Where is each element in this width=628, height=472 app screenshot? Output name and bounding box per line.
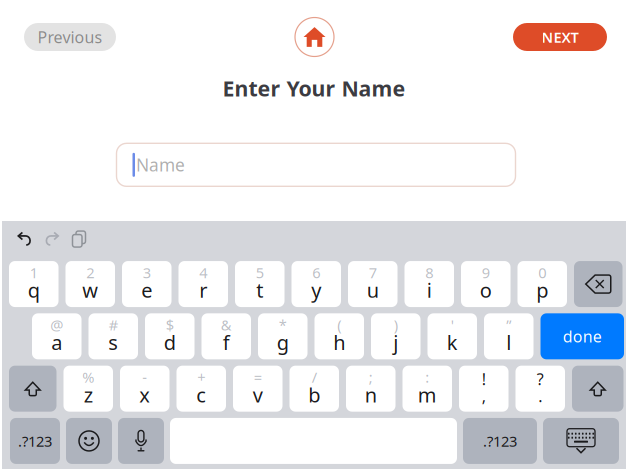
button[interactable]: ? <box>515 366 565 412</box>
button[interactable]: ” <box>484 313 533 359</box>
button[interactable]: Dictation <box>118 418 164 464</box>
button[interactable]: 7 <box>348 261 397 307</box>
button[interactable]: # <box>88 313 138 359</box>
staticText: @ <box>50 315 63 335</box>
button[interactable]: Hide keyboard <box>543 418 619 464</box>
staticText: * <box>279 315 287 335</box>
button[interactable]: Shift <box>572 366 623 412</box>
button[interactable]: 6 <box>291 261 341 307</box>
button[interactable]: Undo <box>17 231 33 246</box>
staticText: 0 <box>538 263 546 282</box>
button[interactable]: 0 <box>517 261 567 307</box>
staticText: 6 <box>312 263 320 282</box>
staticText: . <box>538 385 542 407</box>
staticText: m <box>418 381 437 408</box>
button[interactable]: 4 <box>178 261 228 307</box>
button[interactable]: ) <box>371 313 420 359</box>
staticText: k <box>447 329 458 356</box>
button[interactable]: .?123 <box>463 418 537 464</box>
button[interactable]: ( <box>314 313 364 359</box>
staticText: 1 <box>30 263 38 282</box>
button[interactable]: ! <box>459 366 508 412</box>
button[interactable]: .?123 <box>10 418 60 464</box>
staticText: p <box>536 277 548 303</box>
button[interactable]: 2 <box>65 261 115 307</box>
staticText: 2 <box>86 263 94 282</box>
staticText: ? <box>537 368 544 390</box>
staticText: , <box>482 385 486 407</box>
staticText: o <box>480 277 492 303</box>
staticText: 3 <box>143 263 151 282</box>
button[interactable]: Redo <box>43 231 59 246</box>
button[interactable]: 1 <box>9 261 58 307</box>
staticText: q <box>28 277 40 303</box>
staticText: a <box>51 329 62 356</box>
staticText: - <box>142 367 147 387</box>
button[interactable]: - <box>120 366 169 412</box>
staticText: + <box>197 367 205 387</box>
button[interactable]: Home <box>293 16 335 58</box>
staticText: ; <box>369 367 373 387</box>
button[interactable]: Paste <box>72 231 85 247</box>
button[interactable]: : <box>402 366 452 412</box>
staticText: e <box>141 277 152 303</box>
button[interactable]: Previous <box>24 23 116 51</box>
staticText: b <box>308 381 320 408</box>
staticText: 9 <box>482 263 490 282</box>
staticText: $ <box>166 315 174 335</box>
staticText: d <box>164 329 176 356</box>
button[interactable]: / <box>289 366 339 412</box>
staticText: done <box>563 326 602 347</box>
staticText: 5 <box>256 263 264 282</box>
button[interactable]: 5 <box>235 261 284 307</box>
button[interactable]: ; <box>346 366 395 412</box>
staticText: t <box>256 277 263 303</box>
staticText: : <box>425 367 429 387</box>
button[interactable]: $ <box>145 313 194 359</box>
staticText: 4 <box>199 263 207 282</box>
staticText: & <box>221 315 232 335</box>
staticText: ( <box>337 315 341 335</box>
button[interactable]: % <box>63 366 113 412</box>
button[interactable]: 8 <box>404 261 454 307</box>
staticText: l <box>506 329 511 356</box>
staticText: Previous <box>37 26 102 48</box>
staticText: y <box>311 277 321 303</box>
staticText: r <box>199 277 207 303</box>
staticText: w <box>82 277 98 303</box>
button[interactable]: NEXT <box>513 23 607 51</box>
staticText: x <box>139 381 150 408</box>
button[interactable]: 3 <box>122 261 171 307</box>
button[interactable]: Shift <box>9 366 56 412</box>
button[interactable]: & <box>201 313 251 359</box>
staticText: % <box>82 367 94 387</box>
staticText: Name <box>136 153 185 176</box>
button[interactable]: = <box>233 366 282 412</box>
staticText: Enter Your Name <box>222 74 405 102</box>
staticText: 7 <box>369 263 377 282</box>
staticText: f <box>223 329 230 356</box>
button[interactable]: * <box>258 313 307 359</box>
staticText: # <box>109 315 118 335</box>
staticText: c <box>196 381 206 408</box>
button[interactable]: Backspace <box>574 261 622 307</box>
staticText: s <box>108 329 118 356</box>
staticText: z <box>84 381 93 408</box>
staticText: j <box>393 329 398 356</box>
staticText: NEXT <box>541 27 578 47</box>
staticText: ) <box>394 315 398 335</box>
button[interactable]: done <box>540 313 624 359</box>
staticText: v <box>253 381 263 408</box>
button[interactable]: ' <box>427 313 477 359</box>
staticText: g <box>277 329 289 356</box>
staticText: .?123 <box>18 431 52 451</box>
staticText: / <box>312 367 317 387</box>
button[interactable]: @ <box>32 313 81 359</box>
button[interactable]: Emoji <box>66 418 112 464</box>
staticText: 8 <box>425 263 433 282</box>
button[interactable]: + <box>176 366 226 412</box>
button[interactable]: 9 <box>461 261 510 307</box>
staticText: h <box>333 329 345 356</box>
staticText: u <box>367 277 379 303</box>
